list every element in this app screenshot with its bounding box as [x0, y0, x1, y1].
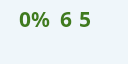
staticText: 0%: [19, 5, 50, 34]
staticText: 6: [60, 5, 73, 34]
staticText: 5: [79, 5, 92, 34]
